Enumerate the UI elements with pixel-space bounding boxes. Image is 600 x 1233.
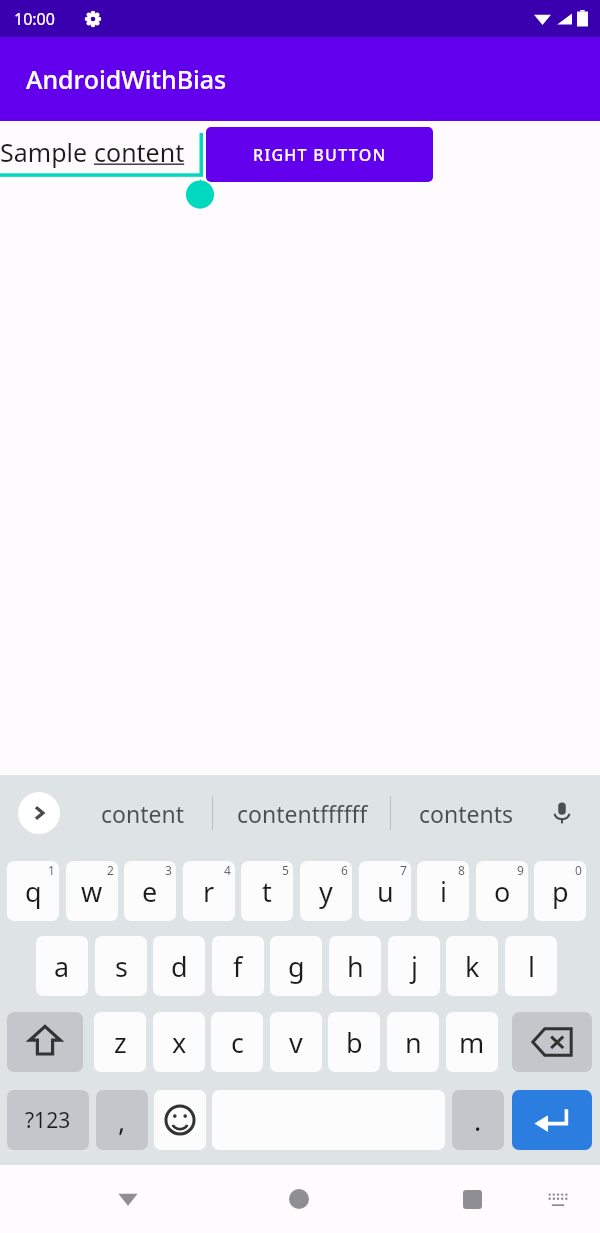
staticText: 2 (107, 862, 114, 878)
button[interactable]: c (211, 1012, 263, 1072)
button[interactable]: e (124, 861, 176, 921)
button[interactable]: . (452, 1090, 504, 1150)
button[interactable]: Switch keyboard (532, 1173, 584, 1225)
button[interactable]: v (270, 1012, 322, 1072)
staticText: s (115, 948, 128, 985)
staticText: contents (419, 798, 513, 829)
staticText: 0 (575, 862, 582, 878)
staticText: a (54, 948, 70, 985)
staticText: Sample (0, 135, 94, 169)
button[interactable]: l (505, 936, 557, 996)
staticText: o (494, 873, 511, 910)
staticText: t (262, 873, 272, 910)
button[interactable]: q (7, 861, 59, 921)
button[interactable]: m (446, 1012, 498, 1072)
staticText: i (440, 873, 447, 910)
staticText: j (411, 948, 418, 985)
button[interactable]: t (241, 861, 293, 921)
staticText: , (118, 1102, 126, 1139)
staticText: l (528, 948, 535, 985)
button[interactable]: Voice input (540, 791, 584, 835)
staticText: w (81, 873, 103, 910)
staticText: AndroidWithBias (26, 62, 227, 96)
staticText: p (552, 873, 569, 910)
button[interactable]: content (80, 783, 205, 843)
staticText: z (114, 1024, 127, 1061)
staticText: y (319, 873, 333, 910)
button[interactable]: Shift (7, 1012, 83, 1072)
button[interactable]: Home (271, 1171, 327, 1227)
staticText: contentffffff (237, 798, 368, 829)
button[interactable]: x (153, 1012, 205, 1072)
staticText: m (459, 1024, 485, 1061)
staticText: RIGHT BUTTON (253, 144, 387, 166)
button[interactable]: n (387, 1012, 439, 1072)
staticText: ?123 (25, 1106, 71, 1135)
staticText: q (25, 873, 42, 910)
button[interactable]: Backspace (512, 1012, 592, 1072)
other: Cursor handle (185, 179, 215, 209)
button[interactable]: f (212, 936, 264, 996)
button[interactable]: k (446, 936, 498, 996)
button[interactable]: , (96, 1090, 148, 1150)
staticText: content (101, 798, 184, 829)
staticText: content (94, 135, 185, 169)
staticText: x (172, 1024, 187, 1061)
button[interactable]: RIGHT BUTTON (206, 127, 433, 182)
staticText: 8 (458, 862, 465, 878)
button[interactable]: Enter (512, 1090, 592, 1150)
staticText: g (288, 948, 305, 985)
staticText: h (347, 948, 364, 985)
button[interactable]: w (66, 861, 118, 921)
staticText: d (171, 948, 188, 985)
button[interactable]: i (417, 861, 469, 921)
button[interactable]: r (183, 861, 235, 921)
staticText: n (405, 1024, 422, 1061)
button[interactable]: Emoji (154, 1090, 206, 1150)
button[interactable]: u (359, 861, 411, 921)
button[interactable]: Recent apps (444, 1171, 500, 1227)
button[interactable]: g (270, 936, 322, 996)
button[interactable]: s (95, 936, 147, 996)
staticText: 3 (165, 862, 172, 878)
staticText: 5 (282, 862, 289, 878)
staticText: 1 (48, 862, 55, 878)
staticText: e (142, 873, 158, 910)
button[interactable]: b (328, 1012, 380, 1072)
button[interactable]: d (153, 936, 205, 996)
staticText: r (203, 873, 215, 910)
staticText: v (289, 1024, 303, 1061)
staticText: 7 (400, 862, 407, 878)
button[interactable]: z (94, 1012, 146, 1072)
staticText: . (474, 1102, 482, 1139)
staticText: u (377, 873, 394, 910)
button[interactable]: j (388, 936, 440, 996)
button[interactable]: contentffffff (218, 783, 386, 843)
staticText: c (231, 1024, 244, 1061)
staticText: 10:00 (14, 8, 55, 30)
button[interactable]: Sample (0, 133, 203, 181)
staticText: b (346, 1024, 363, 1061)
staticText: 4 (224, 862, 231, 878)
staticText: f (233, 948, 243, 985)
button[interactable]: ?123 (7, 1090, 89, 1150)
button[interactable]: y (300, 861, 352, 921)
button[interactable]: p (534, 861, 586, 921)
button[interactable]: a (36, 936, 88, 996)
staticText: 6 (341, 862, 348, 878)
staticText: k (465, 948, 480, 985)
button[interactable]: contents (398, 783, 533, 843)
staticText: 9 (517, 862, 524, 878)
button[interactable]: h (329, 936, 381, 996)
button[interactable]: More suggestions (18, 792, 60, 834)
button[interactable]: Back (100, 1171, 156, 1227)
button[interactable]: o (476, 861, 528, 921)
